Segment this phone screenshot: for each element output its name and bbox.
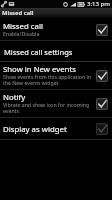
staticText: 3:13 pm (87, 0, 110, 8)
staticText: Vibrate and show icon for incoming event… (3, 101, 95, 114)
staticText: Missed call (3, 21, 43, 32)
button[interactable]: Notify (0, 90, 112, 118)
staticText: Show in New events (3, 64, 76, 75)
staticText: Enable/Disable (3, 30, 40, 37)
staticText: Notify (3, 92, 26, 103)
button[interactable]: Show in New events (0, 62, 112, 90)
button[interactable]: Missed call (0, 18, 112, 41)
staticText: Show events from this application in the… (3, 73, 95, 86)
staticText: Display as widget (3, 124, 67, 135)
button[interactable]: Display as widget (0, 118, 112, 140)
staticText: Missed call (2, 9, 34, 17)
staticText: Missed call settings (4, 47, 73, 57)
